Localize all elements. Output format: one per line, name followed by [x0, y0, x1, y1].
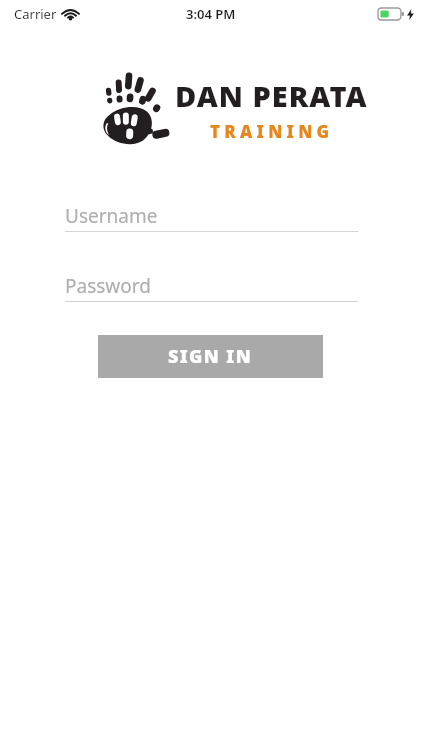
button[interactable]: Username — [65, 203, 358, 237]
button[interactable]: SIGN IN — [98, 335, 323, 378]
staticText: 3:04 PM — [186, 5, 236, 23]
button[interactable]: Password — [65, 273, 358, 307]
staticText: TRAINING — [210, 120, 334, 143]
staticText: Carrier — [14, 5, 57, 23]
staticText: Password — [65, 273, 151, 299]
staticText: Username — [65, 203, 158, 229]
staticText: SIGN IN — [168, 344, 253, 369]
staticText: DAN PERATA — [175, 76, 368, 115]
